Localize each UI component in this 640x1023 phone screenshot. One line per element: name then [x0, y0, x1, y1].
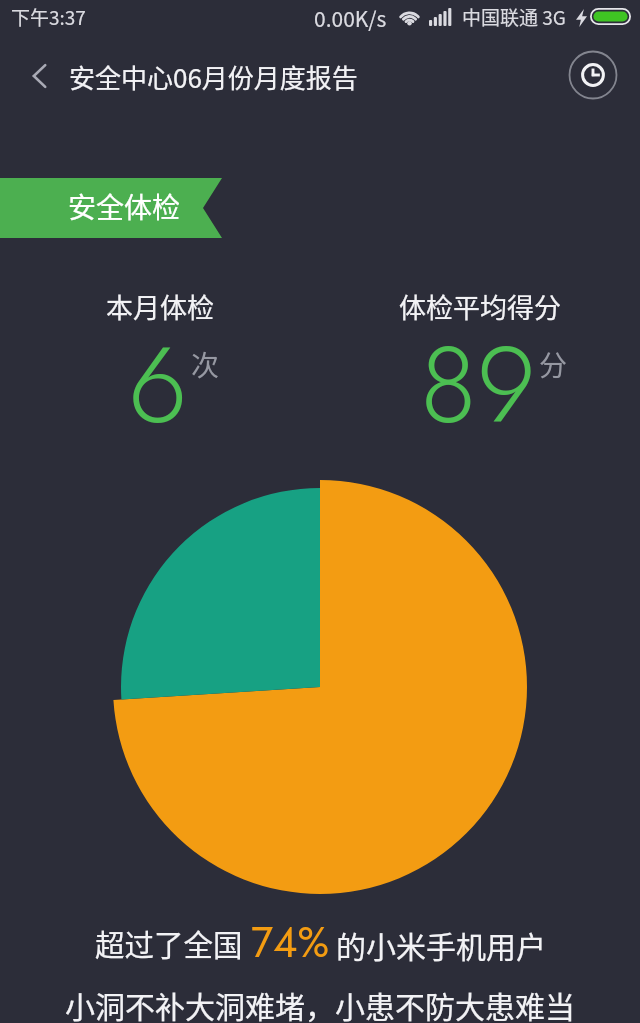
- button[interactable]: History: [565, 47, 621, 103]
- staticText: 体检平均得分: [399, 287, 561, 326]
- staticText: 下午3:37: [11, 3, 86, 31]
- staticText: 中国联通 3G: [462, 3, 566, 31]
- staticText: 本月体检: [106, 287, 214, 326]
- staticText: 次: [191, 344, 220, 385]
- staticText: 0.00K/s: [314, 3, 387, 33]
- button[interactable]: 安全体检: [0, 178, 222, 238]
- staticText: 89: [420, 309, 536, 462]
- staticText: 安全中心06月份月度报告: [69, 58, 358, 96]
- staticText: 超过了全国: [95, 922, 243, 965]
- staticText: 分: [539, 344, 568, 385]
- staticText: 6: [128, 309, 188, 462]
- staticText: 安全体检: [68, 186, 181, 227]
- button[interactable]: Back: [15, 52, 63, 100]
- staticText: 的小米手机用户: [336, 923, 546, 966]
- staticText: 小洞不补大洞难堵，小患不防大患难当: [0, 983, 640, 1023]
- staticText: 74%: [251, 912, 330, 973]
